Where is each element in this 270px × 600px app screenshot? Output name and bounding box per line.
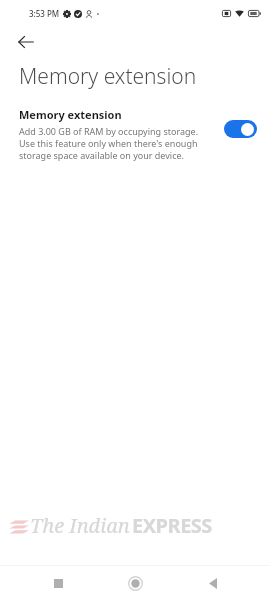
button[interactable]: Home (115, 566, 155, 600)
button[interactable]: Recent apps (38, 566, 78, 600)
button[interactable]: Back (10, 26, 42, 58)
button[interactable]: Back (193, 566, 233, 600)
staticText: Memory extension (19, 62, 197, 91)
button[interactable]: Memory extension toggle, on (224, 120, 257, 138)
button[interactable]: Memory extension (0, 103, 270, 165)
staticText: The Indian (30, 512, 130, 539)
staticText: 3:53 PM (29, 8, 60, 19)
staticText: Memory extension (19, 107, 122, 122)
staticText: Add 3.00 GB of RAM by occupying storage.… (19, 125, 216, 161)
staticText: EXPRESS (132, 512, 212, 539)
